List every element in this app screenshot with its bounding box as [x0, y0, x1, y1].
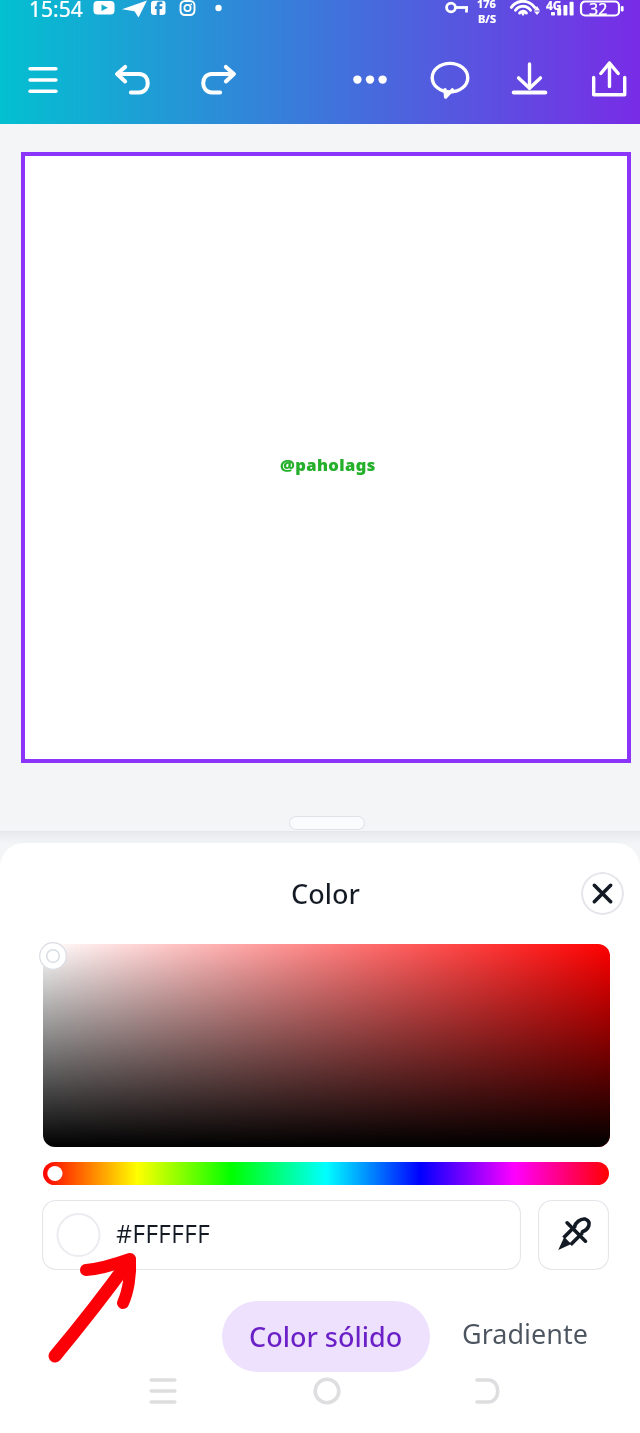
button[interactable]: Close	[581, 872, 624, 915]
button[interactable]: Back	[465, 1367, 513, 1415]
button[interactable]	[43, 944, 610, 1147]
staticText: @paholags	[280, 453, 376, 475]
staticText: 15:54	[29, 0, 83, 24]
button[interactable]: Gradiente	[445, 1299, 605, 1367]
button[interactable]: Share	[580, 54, 632, 106]
button[interactable]: #FFFFFF	[42, 1200, 521, 1270]
staticText: Gradiente	[462, 1315, 588, 1352]
button[interactable]: More options	[344, 54, 396, 106]
staticText: 32	[589, 0, 608, 20]
button[interactable]: Eyedropper	[538, 1200, 609, 1270]
staticText: Color sólido	[249, 1318, 403, 1355]
staticText: Color	[291, 875, 360, 912]
button[interactable]: Menu	[17, 54, 69, 106]
button[interactable]	[43, 1162, 609, 1185]
button[interactable]: @paholags	[21, 152, 631, 763]
staticText: 4G	[546, 0, 562, 13]
staticText: B/S	[478, 11, 496, 26]
button[interactable]: Drag handle	[289, 816, 365, 830]
button[interactable]: Download	[503, 54, 555, 106]
button[interactable]: Color sólido	[222, 1301, 430, 1372]
button[interactable]: Recents	[139, 1367, 187, 1415]
staticText: 176	[477, 0, 496, 11]
button[interactable]: Home	[303, 1367, 351, 1415]
staticText: #FFFFFF	[116, 1216, 211, 1250]
button[interactable]: Comments	[423, 54, 475, 106]
button[interactable]: Redo	[191, 56, 243, 108]
button[interactable]: Undo	[108, 56, 160, 108]
